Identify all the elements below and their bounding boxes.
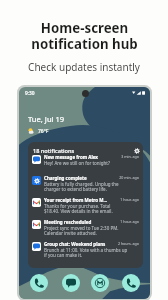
staticText: Project sync moved to Tue 2:30 PM. Calen… bbox=[44, 225, 119, 237]
button[interactable]: New message from Alex bbox=[32, 154, 139, 174]
staticText: Brunch at 11:00. Vote with a thumbs up i… bbox=[44, 247, 128, 259]
button[interactable]: Notification settings bbox=[132, 146, 141, 155]
staticText: 3 min. ago bbox=[113, 154, 139, 159]
staticText: Check updates instantly bbox=[28, 60, 140, 74]
staticText: 2 hours. ago bbox=[113, 241, 139, 246]
staticText: Battery is fully charged. Unplug the cha… bbox=[44, 181, 119, 193]
staticText: Charging complete bbox=[44, 175, 87, 181]
button[interactable]: Dialer bbox=[122, 274, 140, 292]
button[interactable]: Meeting rescheduled bbox=[32, 219, 139, 239]
button[interactable]: Your receipt from Metro M... bbox=[32, 197, 139, 217]
button[interactable]: Messages bbox=[62, 274, 80, 292]
button[interactable]: Group chat: Weekend plans bbox=[32, 241, 139, 261]
staticText: 76°F bbox=[38, 128, 49, 135]
staticText: Thanks for your purchase. Total $18.40. … bbox=[44, 203, 113, 215]
staticText: Tue, Jul 19 bbox=[28, 114, 65, 124]
button[interactable]: Charging complete bbox=[32, 175, 139, 195]
button[interactable]: Gmail bbox=[91, 274, 109, 292]
staticText: Hey! Are we still on for tonight? bbox=[44, 160, 110, 166]
staticText: 9:30 bbox=[25, 90, 35, 97]
staticText: 18 notifications bbox=[33, 147, 75, 155]
staticText: Your receipt from Metro M... bbox=[44, 197, 108, 203]
staticText: 1 hour. ago bbox=[113, 197, 139, 202]
staticText: Meeting rescheduled bbox=[44, 219, 92, 225]
staticText: Home-screen notification hub bbox=[31, 19, 138, 53]
staticText: New message from Alex bbox=[44, 154, 98, 160]
staticText: 20 min. ago bbox=[113, 175, 139, 180]
button[interactable]: Phone bbox=[30, 274, 48, 292]
staticText: 1 hour. ago bbox=[113, 219, 139, 224]
staticText: Group chat: Weekend plans bbox=[44, 241, 106, 247]
